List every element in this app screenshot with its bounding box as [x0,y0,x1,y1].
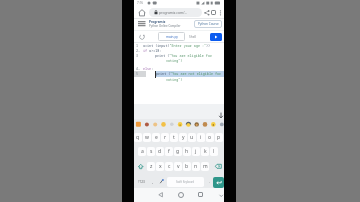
staticText: print ("You are eligible for [155,53,212,58]
button[interactable] [138,21,146,27]
button[interactable]: o [206,133,214,142]
staticText: g [176,148,180,155]
button[interactable] [211,10,216,15]
button[interactable] [158,178,165,185]
button[interactable]: , [149,176,156,187]
staticText: o [208,134,212,141]
button[interactable]: programiz.com/... [149,8,202,17]
staticText: 1 [136,43,139,48]
staticText: u [190,134,194,141]
button[interactable] [135,162,146,171]
staticText: programiz.com/... [159,10,188,15]
staticText: else: [143,66,154,71]
button[interactable] [219,10,222,16]
button[interactable] [213,177,224,188]
staticText: Programiz [149,20,166,24]
staticText: v [177,163,180,170]
staticText: z [150,163,153,170]
staticText: voting") [166,77,183,82]
staticText: Python Online Compiler [149,24,181,28]
button[interactable]: z [147,162,155,171]
staticText: h [185,148,189,155]
button[interactable]: Swift Keyboard [167,177,204,187]
button[interactable]: s [147,147,155,156]
staticText: e [155,134,158,141]
button[interactable] [139,34,145,40]
button[interactable]: t [170,133,178,142]
staticText: t [173,134,175,141]
staticText: l [213,148,215,155]
button[interactable]: v [174,162,182,171]
staticText: 5 [136,71,139,76]
staticText: p [217,134,221,141]
button[interactable]: q [134,133,142,142]
staticText: , [152,179,154,185]
button[interactable] [198,192,203,197]
button[interactable]: g [174,147,182,156]
button[interactable]: e [152,133,160,142]
button[interactable]: ?123 [135,176,148,187]
button[interactable] [213,162,224,171]
button[interactable] [178,192,184,198]
button[interactable]: p [215,133,223,142]
button[interactable] [138,9,146,17]
button[interactable]: Python Course [194,20,222,28]
staticText: y [182,134,185,141]
button[interactable]: main.py [158,32,185,41]
staticText: c [168,163,171,170]
staticText: main.py [166,35,178,39]
staticText: q [136,134,140,141]
staticText: 7:16 [137,1,143,5]
staticText: . [209,179,211,185]
button[interactable]: y [179,133,187,142]
button[interactable]: a [138,147,146,156]
button[interactable]: h [183,147,191,156]
button[interactable]: n [192,162,200,171]
staticText: voting") [166,58,183,63]
button[interactable] [210,33,222,41]
button[interactable]: j [192,147,200,156]
button[interactable]: Shell [186,32,200,41]
staticText: x [159,163,162,170]
button[interactable]: l [210,147,218,156]
staticText: a=int (input("Enter your age :")) [143,43,211,48]
staticText: i [200,134,202,141]
staticText: s [150,148,153,155]
staticText: 3 [136,53,139,58]
button[interactable]: i [197,133,205,142]
staticText: a [141,148,144,155]
staticText: n [194,163,198,170]
button[interactable] [204,10,210,16]
staticText: if a>=18: [143,48,162,53]
button[interactable]: c [165,162,173,171]
staticText: 2- [136,48,141,53]
staticText: w [145,134,149,141]
button[interactable]: d [156,147,164,156]
staticText: k [204,148,207,155]
button[interactable]: x [156,162,164,171]
staticText: Swift Keyboard [176,180,195,184]
button[interactable] [158,192,164,198]
button[interactable]: w [143,133,151,142]
staticText: d [158,148,162,155]
staticText: j [195,148,197,155]
button[interactable]: f [165,147,173,156]
staticText: 4- [136,66,141,71]
staticText: f [168,148,170,155]
button[interactable]: k [201,147,209,156]
staticText: Python Course [198,22,219,26]
button[interactable]: r [161,133,169,142]
button[interactable]: b [183,162,191,171]
button[interactable]: u [188,133,196,142]
staticText: Shell [189,35,197,39]
staticText: b [185,163,189,170]
staticText: print ("You are not eligible for [156,71,222,76]
button[interactable]: m [201,162,209,171]
staticText: r [164,134,167,141]
staticText: m [203,163,208,170]
staticText: ?123 [138,180,145,184]
